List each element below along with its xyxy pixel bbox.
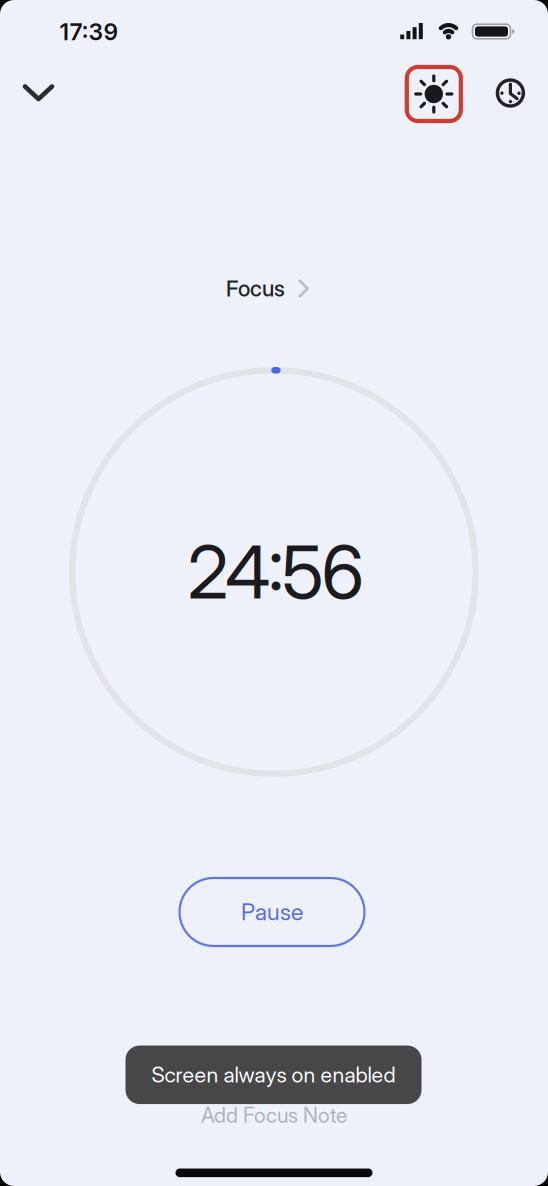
button[interactable] [20, 81, 57, 104]
button[interactable] [405, 65, 463, 123]
staticText: Focus [226, 275, 285, 302]
staticText: 17:39 [59, 18, 118, 46]
staticText: Pause [241, 898, 303, 926]
staticText: Add Focus Note [201, 1102, 347, 1128]
button[interactable]: Focus [226, 275, 310, 302]
button[interactable]: Add Focus Note [201, 1102, 347, 1128]
staticText: Screen always on enabled [151, 1062, 395, 1088]
button[interactable]: Pause [179, 878, 364, 946]
button[interactable] [493, 76, 527, 110]
staticText: 24:56 [187, 528, 365, 616]
